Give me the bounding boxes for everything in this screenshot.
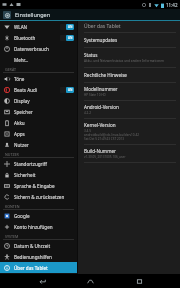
staticText: AN [68,88,73,92]
staticText: WLAN [14,24,60,30]
button[interactable]: Recent apps [132,274,146,288]
button[interactable]: Status [78,48,180,67]
staticText: 11:42 [166,2,178,8]
staticText: Töne [14,76,74,82]
staticText: Sprache & Eingabe [14,183,74,189]
staticText: v1.30.05_20131005.106_user [84,155,126,159]
button[interactable]: Datenverbrauch [0,43,77,54]
staticText: Display [14,98,74,104]
staticText: Bluetooth [14,35,60,41]
staticText: Akku- und Netzwerkstatus und andere Info… [84,59,165,63]
button[interactable]: Google [0,210,77,221]
staticText: Systemupdates [84,37,118,43]
button[interactable]: Home [83,274,97,288]
staticText: Status [84,52,98,58]
staticText: Konto hinzufügen [14,224,74,230]
staticText: 4.2.2 [84,111,91,115]
staticText: Apps [14,131,74,137]
button[interactable]: Back [35,274,49,288]
staticText: Standortzugriff [14,161,74,167]
staticText: Build-Nummer [84,148,116,154]
button[interactable]: Mehr… [0,54,77,65]
staticText: Mehr… [14,57,74,63]
staticText: Rechtliche Hinweise [84,72,127,78]
button[interactable]: Standortzugriff [0,158,77,169]
button[interactable]: Nutzer [0,139,77,150]
staticText: Google [14,213,74,219]
staticText: Über das Tablet [14,265,74,271]
button[interactable]: Sprache & Eingabe [0,180,77,191]
staticText: Akku [14,120,74,126]
staticText: AN [68,36,73,40]
staticText: Datum & Uhrzeit [14,243,74,249]
staticText: 3.4.5 androidbuild@cdc-linux-buildsrv10-… [84,129,140,141]
staticText: Datenverbrauch [14,46,74,52]
staticText: Bedienungshilfen [14,254,74,260]
staticText: AN [68,25,73,29]
button[interactable]: Systemupdates [78,33,180,47]
button[interactable]: Sichern & zurücksetzen [0,191,77,202]
staticText: Sichern & zurücksetzen [14,194,74,200]
button[interactable]: Rechtliche Hinweise [78,68,180,82]
staticText: Einstellungen [15,11,51,18]
button[interactable]: Über das Tablet [0,262,77,273]
staticText: Kernel-Version [84,122,116,128]
button[interactable]: Apps [0,128,77,139]
button[interactable]: Töne [0,73,77,84]
button[interactable]: Sicherheit [0,169,77,180]
staticText: Nutzer [14,142,74,148]
button[interactable]: Beats Audi toggle [60,87,74,93]
staticText: Android-Version [84,104,119,110]
staticText: Sicherheit [14,172,74,178]
button[interactable]: WLAN toggle [60,24,74,30]
staticText: Speicher [14,109,74,115]
staticText: HP Slate 10 HD [84,93,106,97]
button[interactable]: Datum & Uhrzeit [0,240,77,251]
button[interactable]: Speicher [0,106,77,117]
staticText: SYSTEM [5,234,19,239]
button[interactable]: Bedienungshilfen [0,251,77,262]
staticText: KONTEN [5,204,20,209]
button[interactable]: Bluetooth toggle [60,35,74,41]
button[interactable]: WLAN [0,21,77,32]
button[interactable]: Konto hinzufügen [0,221,77,232]
button[interactable]: Display [0,95,77,106]
other: Settings icon [3,11,11,19]
button[interactable]: Akku [0,117,77,128]
button[interactable]: Beats Audi [0,84,77,95]
staticText: Modellnummer [84,86,118,92]
button[interactable]: Bluetooth [0,32,77,43]
staticText: Beats Audi [14,87,60,93]
staticText: Über das Tablet [84,23,121,30]
staticText: GERÄT [5,67,17,72]
staticText: NUTZER [5,152,19,157]
